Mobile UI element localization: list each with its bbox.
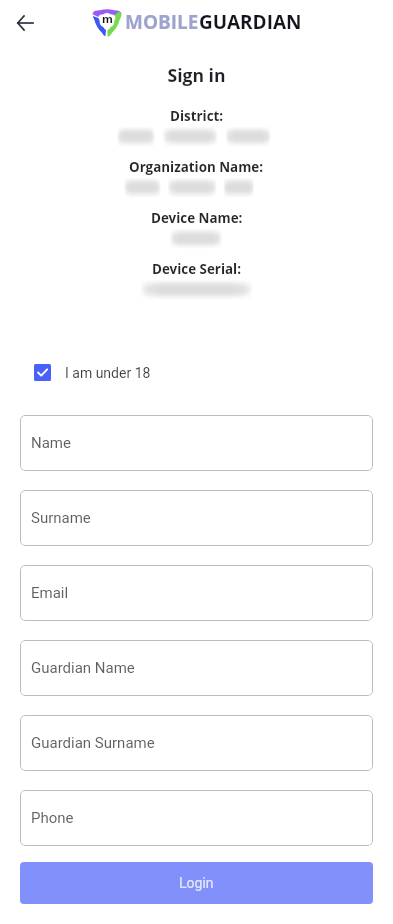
button[interactable]: I am under 18 (34, 364, 151, 381)
button[interactable]: Guardian Surname (20, 715, 373, 771)
staticText: District: (170, 107, 224, 125)
button[interactable]: Login (20, 862, 373, 904)
staticText: Phone (31, 809, 74, 827)
staticText: Guardian Name (31, 659, 135, 677)
button[interactable]: Guardian Name (20, 640, 373, 696)
button[interactable]: Surname (20, 490, 373, 546)
staticText: Device Name: (151, 209, 243, 227)
staticText: Guardian Surname (31, 734, 155, 752)
staticText: m (102, 11, 113, 26)
staticText: Surname (31, 509, 91, 527)
staticText: Device Serial: (152, 260, 241, 278)
button[interactable]: Name (20, 415, 373, 471)
button[interactable]: Email (20, 565, 373, 621)
button[interactable]: Back (5, 3, 45, 43)
staticText: Sign in (0, 63, 393, 87)
staticText: MOBILE (125, 9, 199, 35)
staticText: I am under 18 (65, 365, 151, 381)
staticText: Login (179, 875, 214, 891)
staticText: Email (31, 584, 69, 602)
staticText: Organization Name: (129, 158, 264, 176)
staticText: GUARDIAN (199, 9, 302, 35)
staticText: Name (31, 434, 71, 452)
button[interactable]: Phone (20, 790, 373, 846)
